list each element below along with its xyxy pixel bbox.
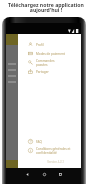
button[interactable]: Profil [18,40,81,49]
staticText: Commandes passées [36,59,55,67]
button[interactable]: Modes de paiement [18,49,81,58]
button[interactable]: Partager [18,67,81,76]
button[interactable]: Back [19,168,36,184]
staticText: FAQ [36,140,42,144]
staticText: Version 4.2.1 [18,160,64,164]
button[interactable]: Recents [52,168,68,184]
staticText: Modes de paiement [36,52,65,56]
staticText: Partager [36,70,49,74]
button[interactable]: Commandes passées [18,58,81,67]
button[interactable]: Conditions générales et confidentialité [18,146,81,155]
button[interactable]: Home [36,168,52,184]
staticText: Téléchargez notre application aujourd'hu… [0,1,92,14]
button[interactable]: FAQ [18,137,81,146]
staticText: Conditions générales et confidentialité [36,147,71,155]
staticText: Profil [36,43,44,47]
